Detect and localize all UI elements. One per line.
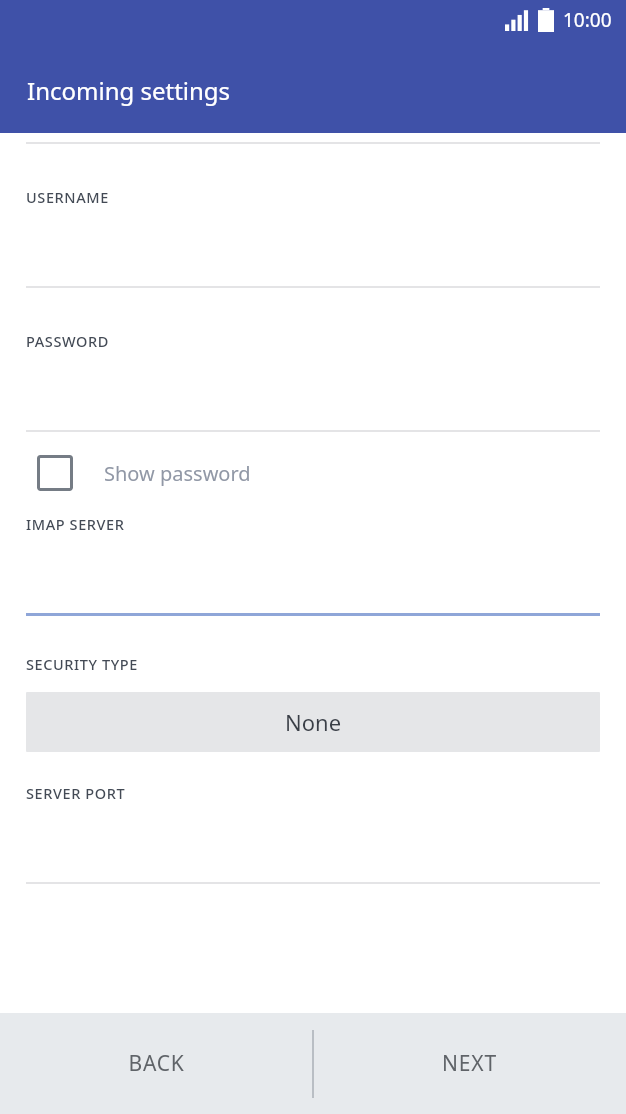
staticText: SERVER PORT: [26, 783, 126, 803]
button[interactable]: NEXT: [313, 1013, 626, 1114]
staticText: None: [285, 707, 342, 737]
button[interactable]: Show password: [26, 451, 600, 495]
staticText: NEXT: [442, 1049, 497, 1078]
staticText: Incoming settings: [27, 74, 231, 107]
staticText: SECURITY TYPE: [26, 654, 138, 674]
staticText: IMAP SERVER: [26, 514, 125, 534]
button[interactable]: BACK: [0, 1013, 313, 1114]
staticText: USERNAME: [26, 187, 109, 207]
button[interactable]: None: [26, 692, 600, 752]
staticText: PASSWORD: [26, 331, 109, 351]
staticText: Show password: [104, 460, 251, 487]
staticText: 10:00: [563, 7, 612, 33]
staticText: BACK: [128, 1049, 185, 1078]
